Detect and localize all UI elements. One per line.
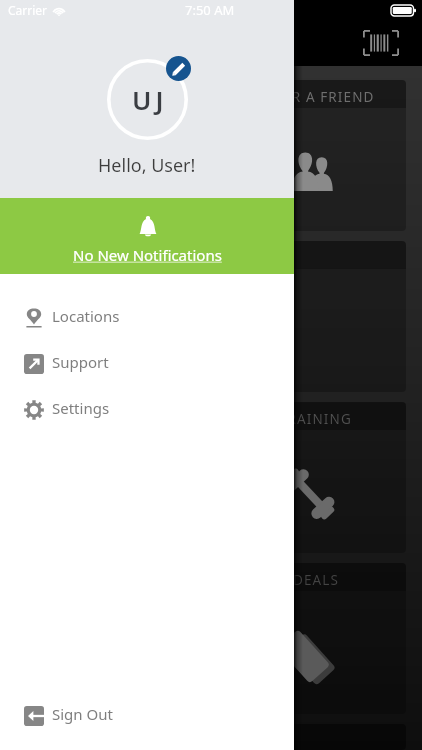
button[interactable]: Settings xyxy=(0,387,294,433)
staticText: Carrier xyxy=(8,2,48,18)
button[interactable] xyxy=(16,724,191,750)
staticText: REFER A FRIEND xyxy=(257,88,375,106)
staticText: UJ xyxy=(132,82,168,117)
staticText: No New Notifications xyxy=(73,245,222,265)
button[interactable] xyxy=(16,241,191,392)
staticText: Support xyxy=(52,352,109,372)
staticText: TRAINING xyxy=(279,410,352,428)
staticText: Settings xyxy=(52,398,110,418)
button[interactable]: Support xyxy=(0,341,294,387)
button[interactable]: TRAINING xyxy=(225,402,406,553)
staticText: Sign Out xyxy=(52,704,113,724)
button[interactable]: REWARDS xyxy=(16,563,191,714)
staticText: 7:50 AM xyxy=(185,1,235,19)
button[interactable]: DEALS xyxy=(225,563,406,714)
button[interactable] xyxy=(225,241,406,392)
button[interactable]: Locations xyxy=(0,295,294,341)
staticText: DEALS xyxy=(293,571,339,589)
button[interactable]: No New Notifications xyxy=(0,198,294,274)
button[interactable]: Scan barcode xyxy=(363,30,399,56)
button[interactable]: Sign Out xyxy=(0,693,294,739)
staticText: Hello, User! xyxy=(98,153,196,178)
button[interactable]: REFER A FRIEND xyxy=(225,80,406,231)
button[interactable]: GUEST PASS xyxy=(16,402,191,553)
staticText: GIFT CARDS xyxy=(60,88,147,106)
staticText: Locations xyxy=(52,306,120,326)
staticText: GUEST PASS xyxy=(60,410,148,428)
button[interactable]: GIFT CARDS xyxy=(16,80,191,231)
button[interactable]: Edit profile xyxy=(166,56,191,81)
button[interactable] xyxy=(225,724,406,750)
